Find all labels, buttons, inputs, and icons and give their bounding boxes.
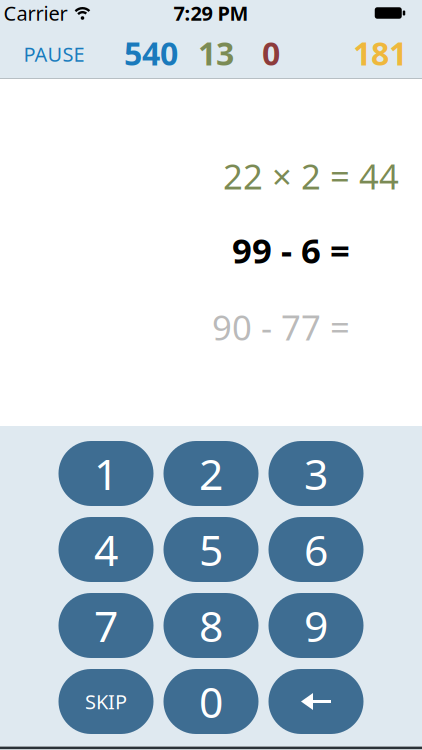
button[interactable]: 6 [268,517,363,582]
button[interactable]: 5 [163,517,258,582]
staticText: 7 [94,597,118,654]
staticText: 6 [304,521,328,578]
staticText: 9 [304,597,328,654]
staticText: 8 [199,597,223,654]
button[interactable] [268,669,363,734]
button[interactable]: 1 [58,441,153,506]
staticText: 44 [350,153,399,199]
staticText: 0 [199,673,223,730]
staticText: Carrier [3,0,67,26]
staticText: 7:29 PM [173,0,248,26]
button[interactable]: 7 [58,593,153,658]
staticText: 90 - 77 = [212,304,350,350]
button[interactable]: 0 [163,669,258,734]
button[interactable]: 9 [268,593,363,658]
staticText: 2 [199,445,223,502]
staticText: 5 [199,521,223,578]
staticText: 540 [124,32,178,74]
staticText: 99 - 6 = [232,227,350,273]
button[interactable]: 2 [163,441,258,506]
button[interactable]: 8 [163,593,258,658]
staticText: 0 [262,32,280,74]
button[interactable]: PAUSE [23,41,84,67]
button[interactable]: SKIP [58,669,153,734]
staticText: 4 [94,521,118,578]
staticText: SKIP [85,688,127,715]
staticText: 22 × 2 = [223,153,350,199]
staticText: 1 [94,445,118,502]
staticText: PAUSE [23,41,84,67]
staticText: 13 [198,32,234,74]
staticText: 181 [353,32,407,74]
button[interactable]: 3 [268,441,363,506]
staticText: 3 [304,445,328,502]
button[interactable]: 4 [58,517,153,582]
